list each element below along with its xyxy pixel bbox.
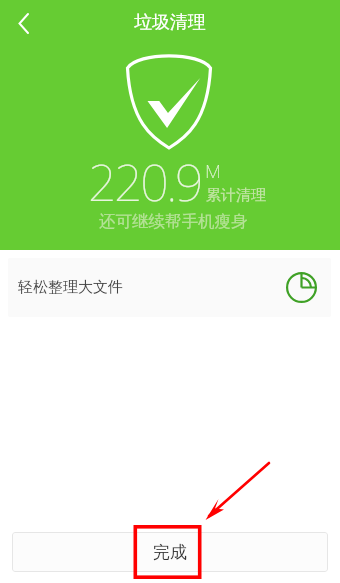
staticText: 还可继续帮手机瘦身 xyxy=(99,211,248,232)
staticText: 垃圾清理 xyxy=(0,11,340,34)
staticText: 完成 xyxy=(153,542,187,563)
staticText: 220.9 xyxy=(88,148,201,216)
button[interactable]: 轻松整理大文件 xyxy=(8,258,331,317)
staticText: M xyxy=(205,158,221,184)
button[interactable]: Back xyxy=(7,7,39,39)
staticText: 累计清理 xyxy=(206,186,266,205)
staticText: 轻松整理大文件 xyxy=(18,278,123,297)
button[interactable]: 完成 xyxy=(12,532,328,572)
